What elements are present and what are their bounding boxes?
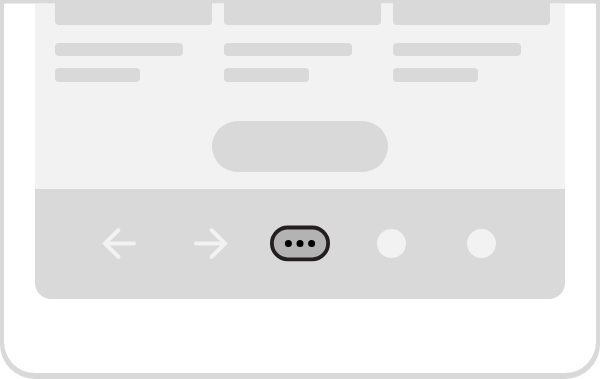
- button[interactable]: Article 1: [55, 0, 212, 82]
- button[interactable]: Back: [86, 210, 152, 276]
- button[interactable]: Tabs: [358, 210, 424, 276]
- button[interactable]: Article 3: [393, 0, 550, 82]
- button[interactable]: More options: [267, 210, 333, 276]
- button[interactable]: Article 2: [224, 0, 381, 82]
- button[interactable]: Action button: [212, 121, 388, 172]
- button[interactable]: Account: [448, 210, 514, 276]
- button[interactable]: Forward: [177, 210, 243, 276]
